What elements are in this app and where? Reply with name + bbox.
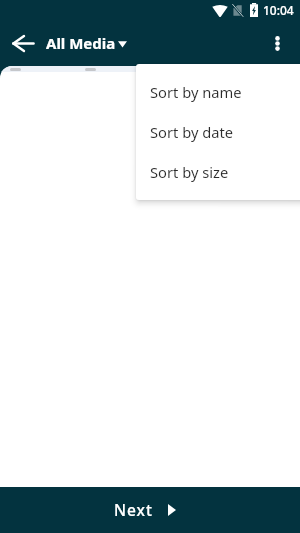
staticText: Sort by size [150, 162, 229, 182]
button[interactable]: Sort by size [136, 152, 300, 192]
staticText: Sort by date [150, 122, 234, 142]
button[interactable]: All Media [46, 33, 127, 53]
staticText: 10:04 [263, 2, 294, 18]
button[interactable]: Back [8, 28, 38, 58]
button[interactable]: Sort by name [136, 72, 300, 112]
button[interactable]: Sort by date [136, 112, 300, 152]
staticText: Next [114, 499, 153, 520]
staticText: All Media [46, 33, 116, 53]
button[interactable]: More options [261, 27, 293, 59]
staticText: Sort by name [150, 82, 242, 102]
button[interactable]: Next [0, 487, 300, 533]
